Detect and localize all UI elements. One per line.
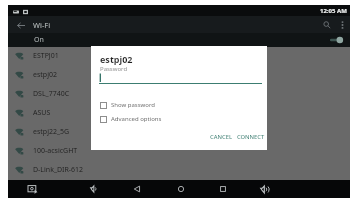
button[interactable]: Volume up: [256, 181, 272, 197]
staticText: Advanced options: [111, 115, 162, 123]
button[interactable]: Back: [129, 181, 145, 197]
staticText: CANCEL: [210, 133, 232, 141]
staticText: Password: [100, 65, 128, 73]
staticText: On: [34, 35, 44, 45]
button[interactable]: Home: [173, 181, 189, 197]
button[interactable]: DSL_7740C: [8, 84, 350, 103]
button[interactable]: 100-acsicGHT: [8, 141, 350, 160]
button[interactable]: ASUS: [8, 103, 350, 122]
staticText: ASUS: [33, 108, 51, 118]
staticText: ESTPJ01: [33, 51, 59, 61]
staticText: Show password: [111, 101, 155, 109]
button[interactable]: Show password: [100, 101, 155, 109]
button[interactable]: Volume down: [86, 181, 102, 197]
staticText: estpj22_5G: [33, 127, 70, 137]
button[interactable]: ESTPJ01: [8, 46, 350, 65]
button[interactable]: Screenshot: [25, 181, 41, 197]
button[interactable]: estpj22_5G: [8, 122, 350, 141]
button[interactable]: estpj02: [8, 65, 350, 84]
staticText: estpj02: [33, 70, 57, 80]
button[interactable]: Search: [320, 18, 334, 32]
staticText: 12:05 AM: [320, 7, 347, 15]
staticText: CONNECT: [237, 133, 265, 141]
staticText: estpj02: [100, 53, 133, 65]
button[interactable]: D-Link_DIR-612: [8, 160, 350, 179]
button[interactable]: More options: [335, 18, 349, 32]
staticText: Wi-Fi: [33, 20, 51, 30]
button[interactable]: Advanced options: [100, 115, 162, 123]
staticText: DSL_7740C: [33, 89, 70, 99]
staticText: D-Link_DIR-612: [33, 165, 84, 175]
staticText: 100-acsicGHT: [33, 146, 78, 156]
button[interactable]: Navigate up: [14, 18, 28, 32]
button[interactable]: CANCEL: [206, 130, 236, 144]
button[interactable]: Recent apps: [215, 181, 231, 197]
button[interactable]: CONNECT: [233, 130, 269, 144]
button[interactable]: Wi-Fi on toggle: [326, 34, 346, 46]
